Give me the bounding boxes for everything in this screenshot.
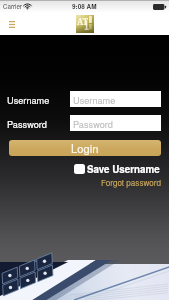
staticText: Login: [71, 140, 99, 156]
button[interactable]: Forgot password: [101, 177, 161, 189]
button[interactable]: Password: [70, 115, 161, 131]
button[interactable]: Save Username: [74, 161, 160, 177]
staticText: Username: [73, 93, 116, 106]
staticText: Username: [7, 93, 50, 106]
staticText: Carrier: [3, 2, 22, 11]
button[interactable]: Login: [9, 140, 161, 156]
staticText: Password: [7, 117, 47, 130]
button[interactable]: Username: [70, 91, 161, 107]
button[interactable]: Open navigation menu: [0, 13, 22, 35]
staticText: 9:08 AM: [72, 2, 97, 11]
staticText: Password: [73, 117, 113, 130]
staticText: AT: [77, 16, 89, 27]
button[interactable]: App logo: [76, 15, 94, 33]
staticText: Save Username: [87, 162, 160, 176]
